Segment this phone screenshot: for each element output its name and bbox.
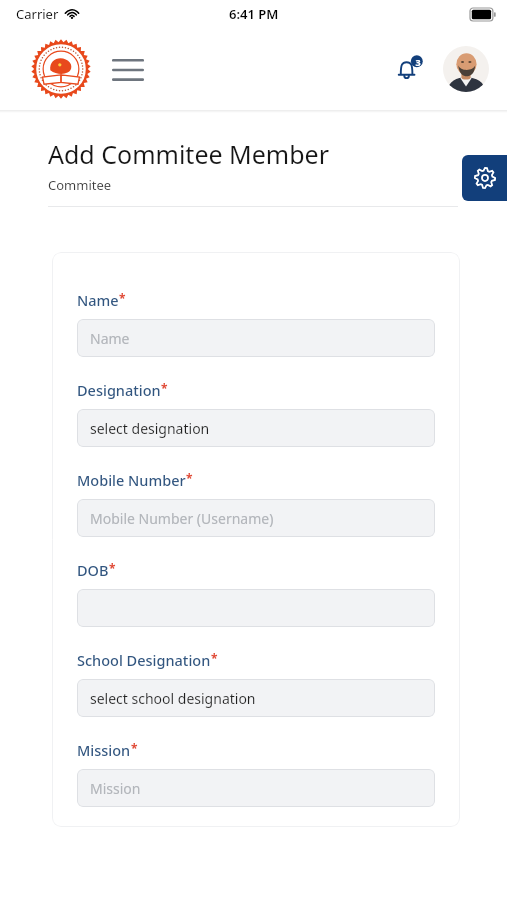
staticText: 6:41 PM: [229, 5, 279, 23]
button[interactable]: Mobile Number (Username): [77, 499, 435, 537]
staticText: Mobile Number (Username): [90, 509, 274, 528]
button[interactable]: Name: [77, 319, 435, 357]
button[interactable]: select designation: [77, 409, 435, 447]
staticText: *: [109, 560, 116, 576]
staticText: 3: [415, 56, 421, 68]
staticText: Designation: [77, 380, 161, 400]
staticText: select designation: [90, 419, 210, 438]
staticText: Mission: [77, 740, 131, 760]
staticText: School Designation: [77, 650, 211, 670]
staticText: *: [131, 740, 138, 756]
button[interactable]: Mission: [77, 769, 435, 807]
staticText: select school designation: [90, 689, 256, 708]
staticText: Name: [90, 329, 130, 348]
staticText: *: [119, 290, 126, 306]
staticText: Commitee: [48, 176, 112, 194]
staticText: DOB: [77, 560, 109, 580]
button[interactable]: [77, 589, 435, 627]
button[interactable]: Notifications, 3 unread: [389, 48, 431, 90]
button[interactable]: Profile: [443, 46, 489, 92]
staticText: *: [211, 650, 218, 666]
staticText: Name: [77, 290, 119, 310]
button[interactable]: Settings: [462, 155, 507, 201]
button[interactable]: School logo: [25, 33, 97, 105]
staticText: *: [161, 380, 168, 396]
button[interactable]: select school designation: [77, 679, 435, 717]
staticText: Add Commitee Member: [48, 137, 330, 171]
staticText: Mobile Number: [77, 470, 186, 490]
staticText: *: [186, 470, 193, 486]
staticText: Carrier: [16, 5, 59, 23]
button[interactable]: Menu: [107, 52, 149, 86]
staticText: Mission: [90, 779, 141, 798]
